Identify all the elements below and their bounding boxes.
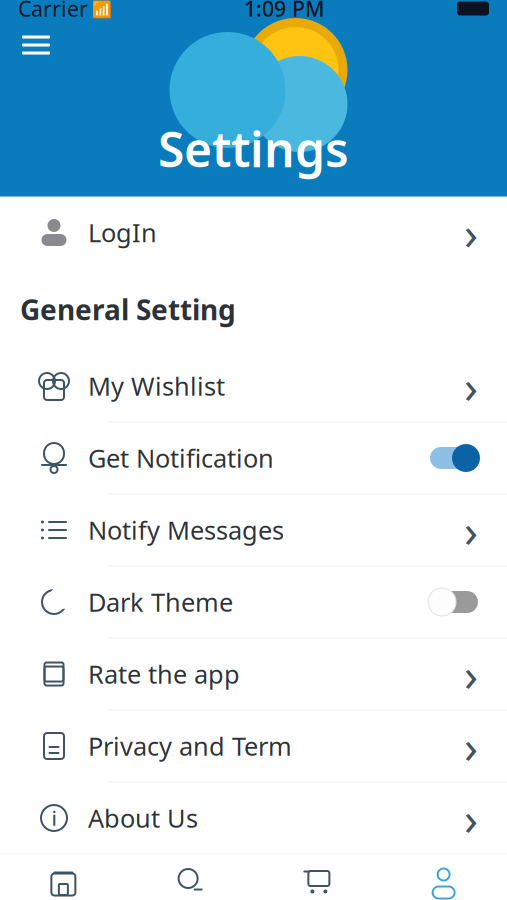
staticText: 📶 (88, 0, 112, 19)
staticText: General Setting (20, 291, 236, 328)
staticText: › (464, 644, 478, 704)
button[interactable]: Cart (253, 854, 380, 900)
button[interactable]: Profile (380, 854, 507, 900)
staticText: Privacy and Term (88, 729, 292, 763)
staticText: Notify Messages (88, 513, 284, 547)
staticText: Carrier (18, 0, 88, 23)
button[interactable]: i (0, 782, 507, 853)
button[interactable]: Privacy and Term (0, 710, 507, 781)
staticText: › (464, 716, 478, 776)
button[interactable]: Rate the app (0, 638, 507, 709)
staticText: Rate the app (88, 657, 240, 691)
staticText: › (464, 788, 478, 848)
button[interactable]: Menu (12, 25, 60, 64)
staticText: My Wishlist (88, 369, 225, 403)
button[interactable]: My Wishlist (0, 350, 507, 421)
staticText: i (51, 805, 56, 831)
staticText: LogIn (88, 216, 157, 249)
button[interactable]: Search (127, 854, 254, 900)
button[interactable]: Get Notification (0, 422, 507, 493)
staticText: About Us (88, 801, 198, 835)
staticText: Dark Theme (88, 585, 233, 619)
button[interactable]: Notify Messages (0, 494, 507, 565)
staticText: 1:09 PM (244, 0, 325, 23)
button[interactable]: Home (0, 854, 127, 900)
staticText: Get Notification (88, 441, 274, 475)
staticText: › (464, 500, 478, 560)
staticText: Settings (158, 117, 349, 180)
button[interactable]: LogIn (0, 196, 507, 268)
staticText: › (464, 202, 478, 263)
button[interactable]: Dark Theme (0, 566, 507, 637)
staticText: › (464, 356, 478, 416)
